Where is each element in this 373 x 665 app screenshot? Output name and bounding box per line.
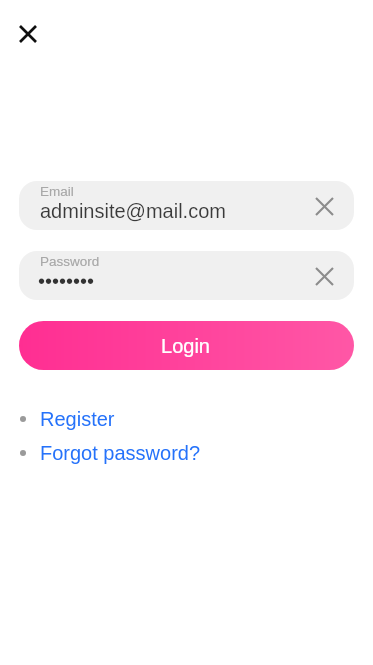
button[interactable]: Register <box>9 407 112 431</box>
staticText: •••••••• <box>38 270 95 292</box>
staticText: Password <box>40 254 100 269</box>
button[interactable]: Email <box>19 181 354 230</box>
button[interactable]: Password <box>19 251 354 300</box>
button[interactable]: Clear Password <box>306 258 342 294</box>
staticText: Email <box>40 184 74 199</box>
button[interactable]: Close <box>13 19 43 49</box>
staticText: Forgot password? <box>40 442 201 464</box>
button[interactable]: Forgot password? <box>9 441 198 465</box>
staticText: adminsite@mail.com <box>40 200 226 222</box>
button[interactable]: Clear Email <box>306 188 342 224</box>
staticText: Login <box>161 335 210 357</box>
button[interactable]: Login <box>19 321 354 370</box>
staticText: Register <box>40 408 115 430</box>
